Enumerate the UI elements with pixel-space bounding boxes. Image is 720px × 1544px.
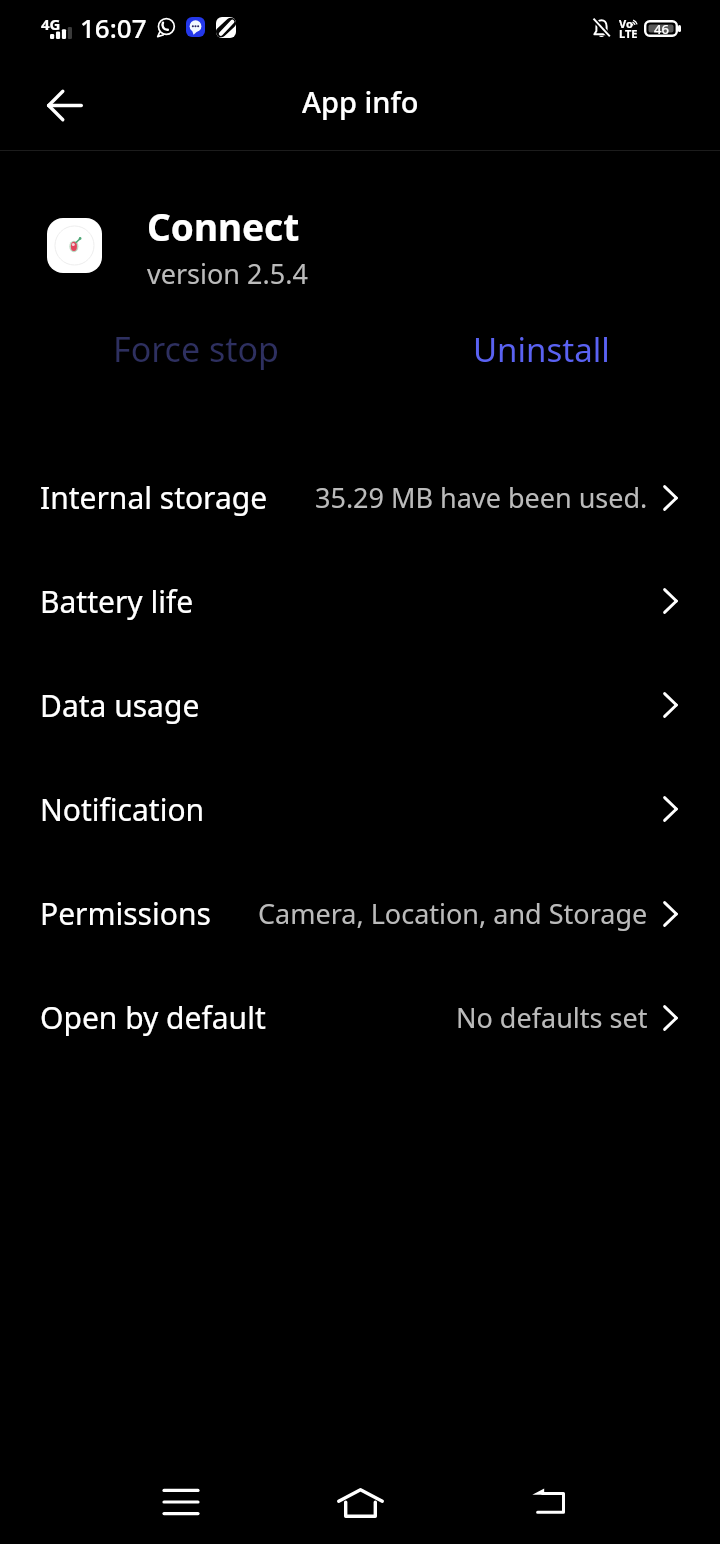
staticText: Uninstall — [473, 327, 610, 372]
staticText: App info — [302, 82, 419, 121]
staticText: Notification — [40, 789, 205, 830]
staticText: No defaults set — [456, 999, 648, 1036]
button[interactable]: Notification — [0, 757, 720, 861]
button[interactable]: Home — [320, 1468, 400, 1538]
button[interactable]: Back — [36, 76, 94, 134]
staticText: Camera, Location, and Storage — [258, 895, 648, 932]
button[interactable]: Data usage — [0, 653, 720, 757]
staticText: Connect — [147, 201, 300, 251]
button[interactable]: Internal storage — [0, 445, 720, 549]
button[interactable]: Force stop — [96, 316, 296, 382]
button[interactable]: Open by default — [0, 965, 720, 1069]
staticText: Vo — [619, 16, 633, 31]
staticText: Permissions — [40, 893, 211, 934]
button[interactable]: Recent apps — [140, 1462, 221, 1542]
staticText: Open by default — [40, 997, 266, 1038]
button[interactable]: Back — [508, 1461, 588, 1541]
staticText: 4G — [41, 14, 61, 34]
staticText: 46 — [654, 20, 669, 37]
staticText: Internal storage — [40, 477, 268, 518]
button[interactable]: Battery life — [0, 549, 720, 653]
staticText: Battery life — [40, 581, 194, 622]
button[interactable]: Uninstall — [441, 316, 641, 382]
staticText: version 2.5.4 — [147, 255, 308, 292]
staticText: 35.29 MB have been used. — [315, 479, 648, 516]
staticText: 16:07 — [80, 10, 147, 45]
staticText: LTE — [619, 26, 638, 41]
button[interactable]: Permissions — [0, 861, 720, 965]
staticText: Data usage — [40, 685, 200, 726]
staticText: Force stop — [113, 326, 279, 372]
